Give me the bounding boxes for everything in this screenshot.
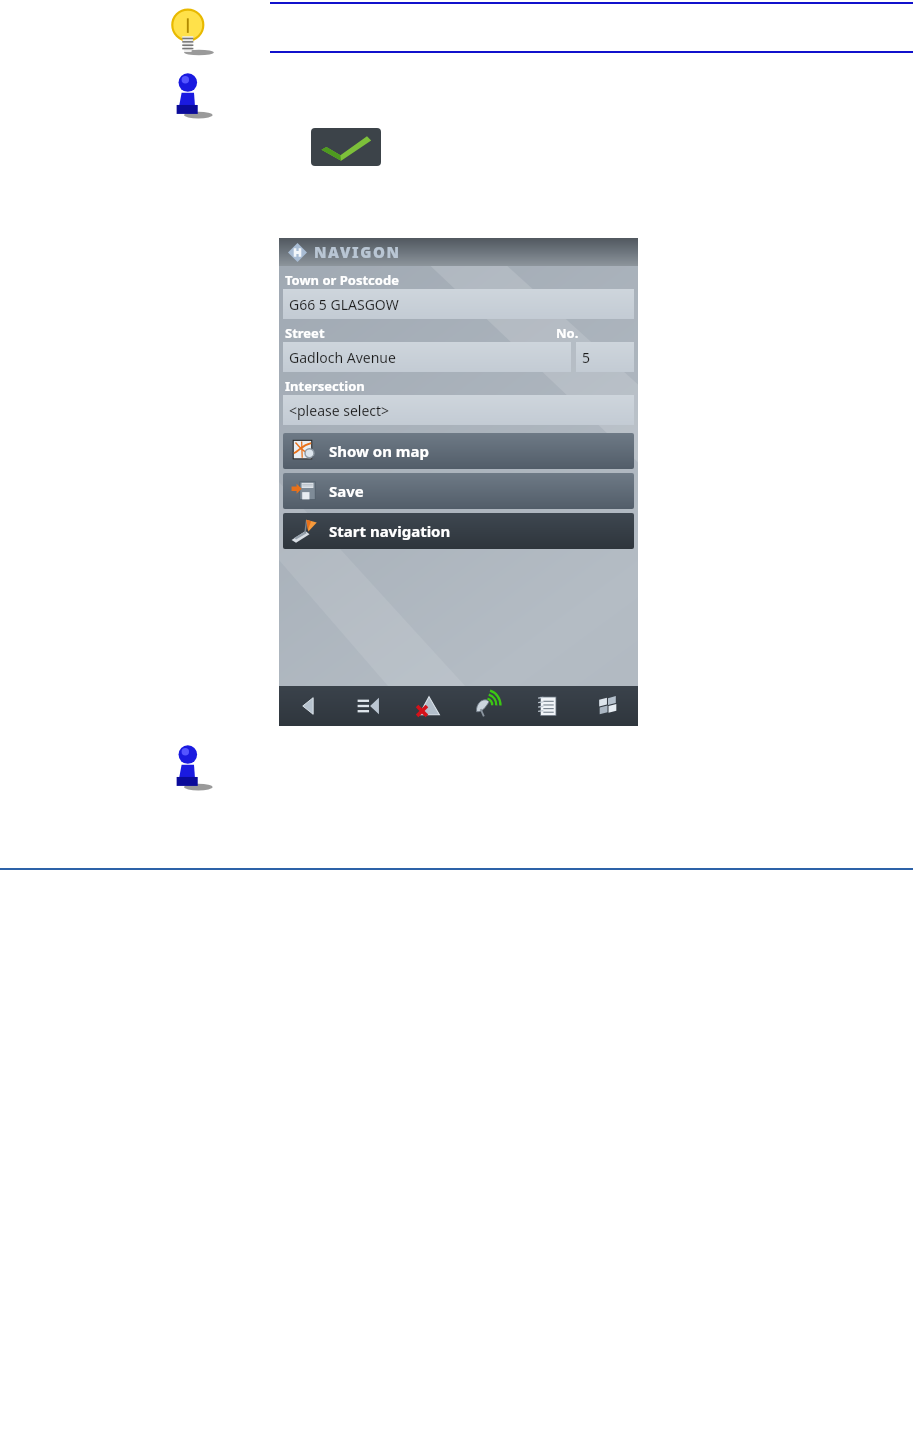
button[interactable]: Save: [283, 473, 634, 509]
staticText: Gadloch Avenue: [289, 348, 396, 367]
staticText: NAVIGON: [314, 242, 401, 262]
staticText: G66 5 GLASGOW: [289, 295, 399, 314]
button[interactable]: Start navigation: [283, 513, 634, 549]
button[interactable]: Start menu: [578, 686, 638, 726]
staticText: Street: [285, 324, 325, 342]
button[interactable]: Back: [279, 686, 338, 726]
staticText: Show on map: [329, 441, 429, 461]
button[interactable]: G66 5 GLASGOW: [283, 289, 634, 319]
staticText: Start navigation: [329, 521, 451, 541]
staticText: Intersection: [285, 377, 365, 395]
button[interactable]: Traffic off: [398, 686, 458, 726]
staticText: Save: [329, 481, 364, 501]
button[interactable]: <please select>: [283, 395, 634, 425]
button[interactable]: GPS status: [458, 686, 518, 726]
button[interactable]: Show on map: [283, 433, 634, 469]
button[interactable]: 5: [576, 342, 634, 372]
button[interactable]: Confirm: [311, 128, 381, 166]
button[interactable]: Notes: [518, 686, 578, 726]
button[interactable]: Route list: [338, 686, 398, 726]
staticText: No.: [556, 324, 579, 342]
button[interactable]: Gadloch Avenue: [283, 342, 571, 372]
staticText: Town or Postcode: [285, 271, 399, 289]
staticText: <please select>: [289, 401, 390, 420]
staticText: 5: [582, 348, 591, 367]
